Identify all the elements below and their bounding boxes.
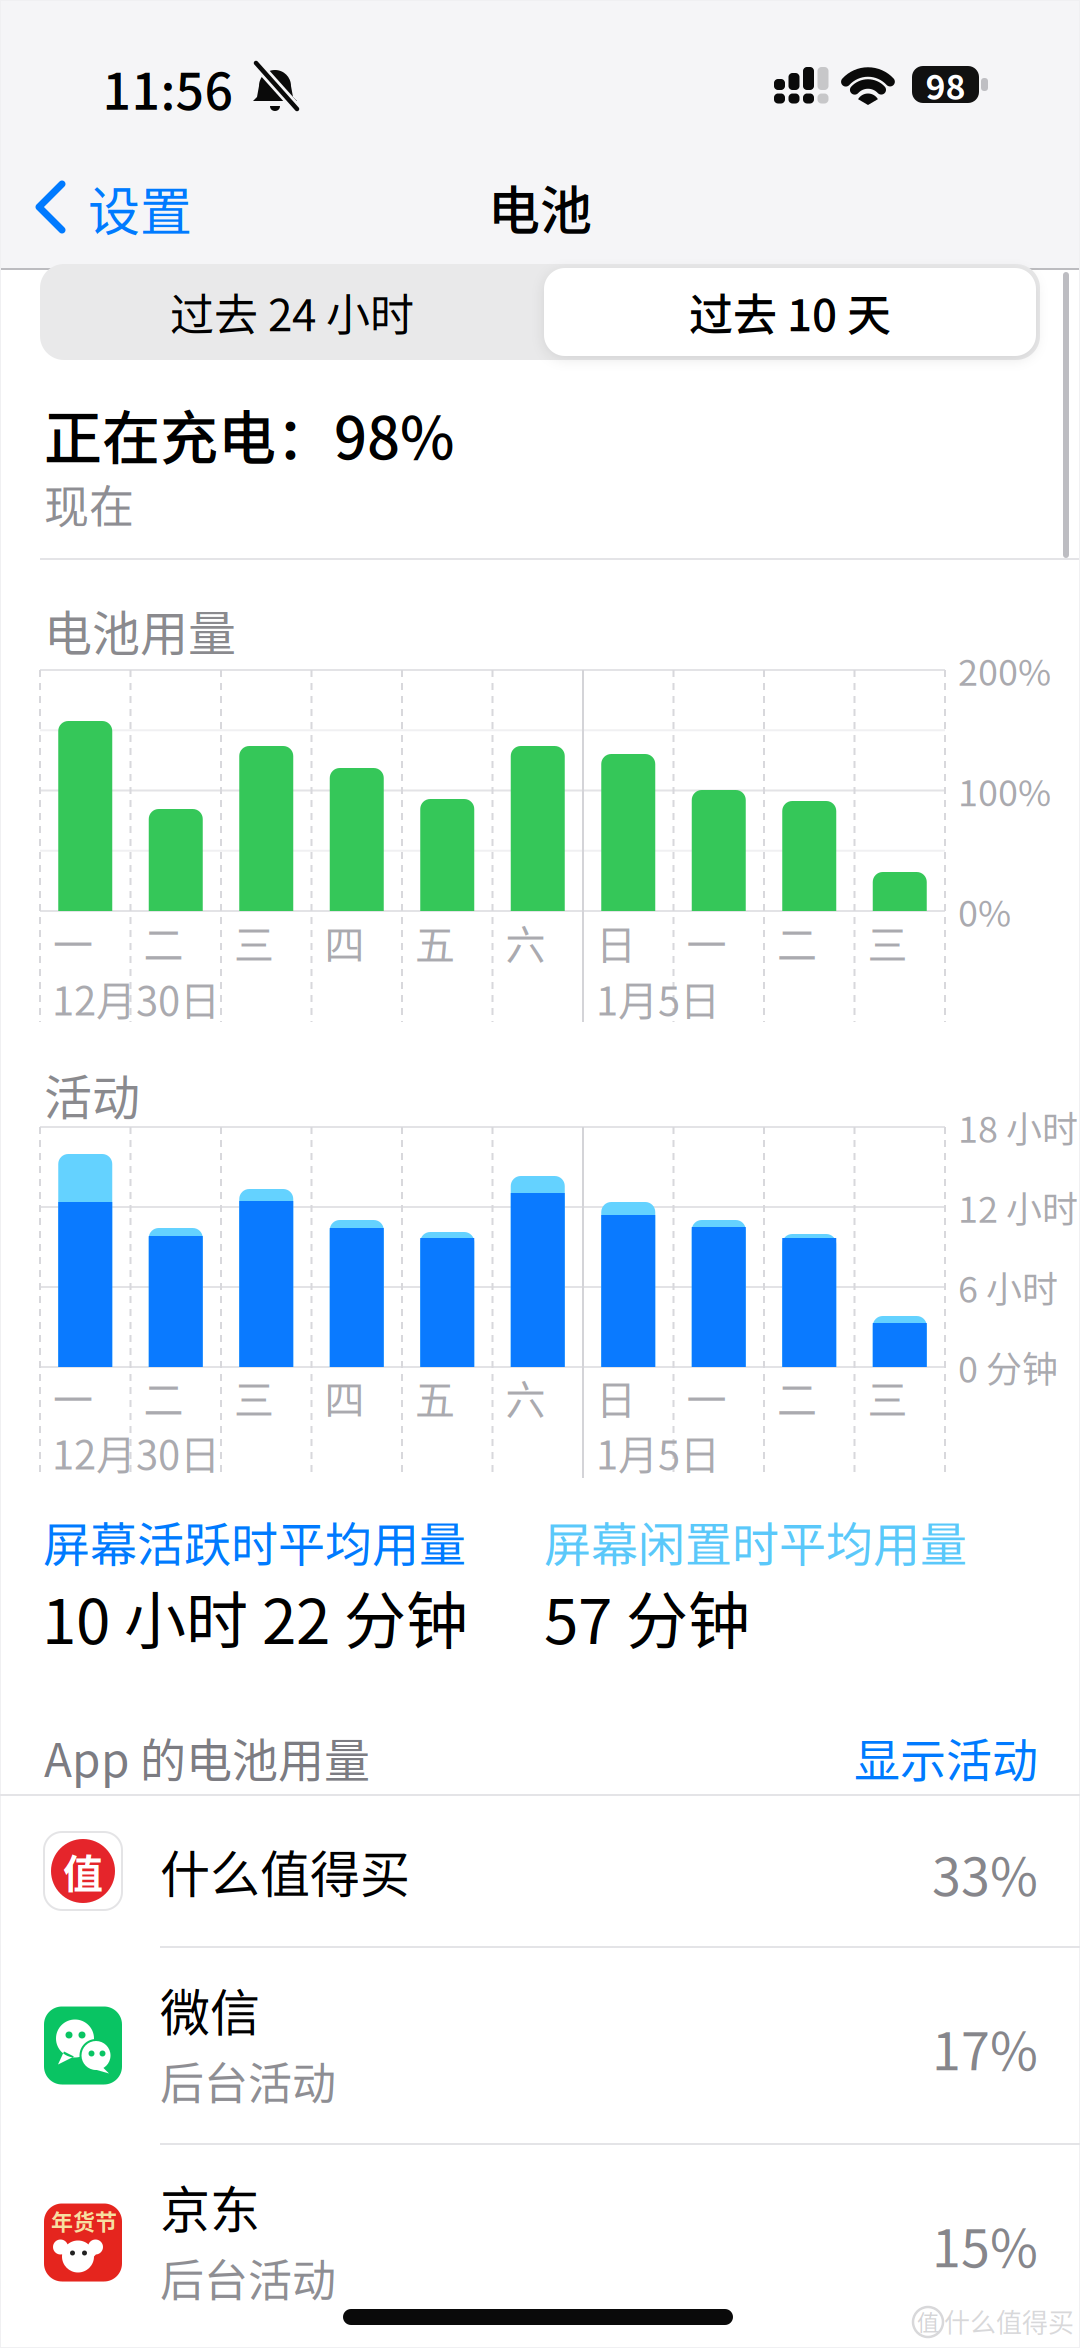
staticText: 六 — [505, 1368, 545, 1426]
staticText: 屏幕活跃时平均用量 — [43, 1507, 466, 1575]
staticText: 12月30日 — [52, 969, 220, 1027]
staticText: 1月5日 — [596, 969, 720, 1027]
staticText: 年货节 — [51, 2205, 117, 2236]
staticText: 98 — [925, 60, 965, 110]
staticText: 过去 24 小时 — [170, 280, 414, 344]
staticText: 15% — [932, 2207, 1038, 2282]
button[interactable]: 值 — [0, 1796, 1080, 1946]
staticText: 电池用量 — [44, 595, 236, 665]
staticText: 微信 — [160, 1973, 260, 2046]
staticText: 18 小时 — [958, 1101, 1078, 1153]
staticText: 三 — [867, 913, 907, 971]
staticText: 设置 — [88, 170, 192, 246]
staticText: 正在充电：98% — [44, 392, 454, 476]
staticText: 什么值得买 — [944, 2302, 1074, 2340]
staticText: 二 — [777, 1368, 817, 1426]
staticText: 三 — [234, 1368, 274, 1426]
staticText: 57 分钟 — [544, 1572, 750, 1662]
button[interactable]: 过去 10 天 — [544, 268, 1036, 356]
button[interactable]: 过去 24 小时 — [47, 264, 537, 360]
staticText: 一 — [686, 1368, 726, 1426]
staticText: 11:56 — [102, 52, 233, 124]
staticText: 四 — [324, 913, 364, 971]
staticText: 四 — [324, 1368, 364, 1426]
staticText: 0% — [958, 885, 1011, 937]
staticText: 电池 — [488, 169, 592, 245]
staticText: 六 — [505, 913, 545, 971]
staticText: 33% — [932, 1835, 1038, 1911]
staticText: 二 — [143, 913, 183, 971]
staticText: 五 — [415, 913, 455, 971]
staticText: 200% — [958, 644, 1051, 696]
staticText: 一 — [53, 1368, 93, 1426]
staticText: 三 — [234, 913, 274, 971]
staticText: 17% — [932, 2010, 1038, 2085]
staticText: 二 — [777, 913, 817, 971]
staticText: 现在 — [44, 471, 134, 537]
staticText: 日 — [596, 913, 636, 971]
button[interactable]: 设置 — [26, 180, 256, 234]
staticText: 后台活动 — [160, 2246, 336, 2309]
staticText: 后台活动 — [160, 2049, 336, 2112]
staticText: 日 — [596, 1368, 636, 1426]
staticText: 12 小时 — [958, 1181, 1078, 1233]
staticText: 过去 10 天 — [689, 280, 891, 344]
staticText: 值 — [917, 2305, 939, 2337]
staticText: 100% — [958, 764, 1051, 816]
button[interactable]: 年货节 — [0, 2145, 1080, 2340]
staticText: 二 — [143, 1368, 183, 1426]
staticText: 一 — [686, 913, 726, 971]
staticText: 6 小时 — [958, 1261, 1058, 1313]
staticText: 什么值得买 — [160, 1835, 410, 1907]
staticText: 京东 — [160, 2170, 260, 2243]
staticText: 1月5日 — [596, 1423, 720, 1481]
staticText: 值 — [63, 1842, 103, 1900]
staticText: 12月30日 — [52, 1423, 220, 1481]
staticText: App 的电池用量 — [44, 1724, 370, 1790]
staticText: 屏幕闲置时平均用量 — [544, 1507, 967, 1575]
staticText: 三 — [867, 1368, 907, 1426]
staticText: 活动 — [44, 1059, 140, 1129]
staticText: 0 分钟 — [958, 1341, 1058, 1393]
staticText: 10 小时 22 分钟 — [42, 1572, 468, 1662]
staticText: 显示活动 — [854, 1724, 1038, 1790]
staticText: 五 — [415, 1368, 455, 1426]
button[interactable]: 显示活动 — [778, 1717, 1038, 1797]
button[interactable]: 微信 — [0, 1948, 1080, 2143]
staticText: 一 — [53, 913, 93, 971]
